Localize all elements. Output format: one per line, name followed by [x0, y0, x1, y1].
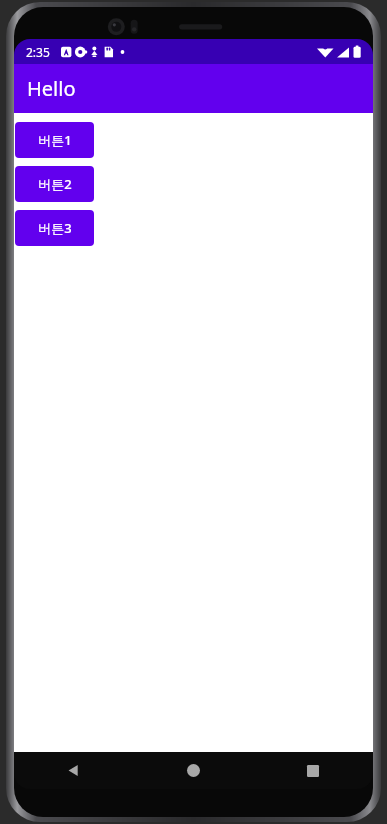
staticText: 버튼3 — [38, 219, 72, 237]
button[interactable]: 버튼1 — [15, 122, 94, 158]
button[interactable]: Recent apps — [253, 752, 373, 789]
button[interactable]: Home — [133, 752, 253, 789]
staticText: Hello — [27, 75, 76, 102]
button[interactable]: 버튼3 — [15, 210, 94, 246]
staticText: 버튼1 — [38, 131, 72, 149]
staticText: 버튼2 — [38, 175, 72, 193]
button[interactable]: 버튼2 — [15, 166, 94, 202]
staticText: 2:35 — [26, 44, 50, 60]
button[interactable]: Back — [14, 752, 133, 789]
